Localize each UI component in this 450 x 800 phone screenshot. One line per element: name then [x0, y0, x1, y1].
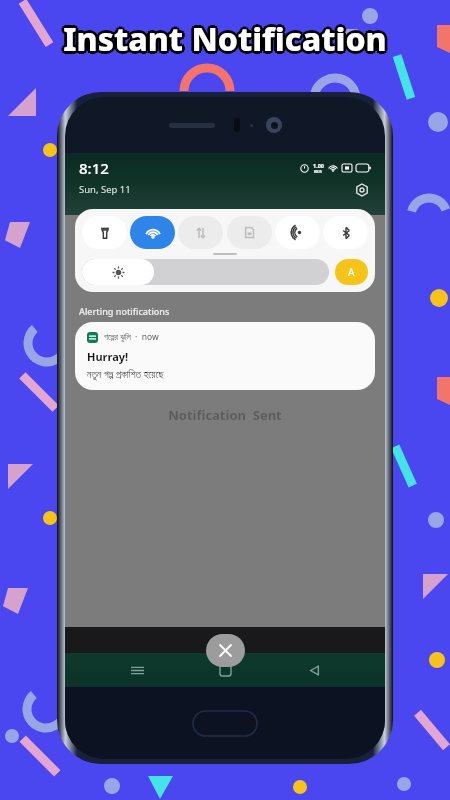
- button[interactable]: Hotspot: [275, 216, 320, 249]
- staticText: A: [348, 265, 355, 279]
- button[interactable]: Mobile data: [178, 216, 223, 249]
- staticText: KB/S: [314, 169, 323, 174]
- staticText: Instant Notification: [66, 17, 390, 61]
- button[interactable]: A: [335, 259, 368, 285]
- staticText: Instant Notification: [63, 14, 387, 58]
- button[interactable]: SIM card: [227, 216, 272, 249]
- staticText: Instant Notification: [63, 17, 387, 61]
- staticText: Instant Notification: [63, 20, 387, 64]
- button[interactable]: Bluetooth: [323, 216, 368, 249]
- staticText: 1.00: [313, 162, 324, 169]
- button[interactable]: Settings: [352, 180, 371, 199]
- staticText: Instant Notification: [65, 19, 389, 63]
- button[interactable]: Flashlight: [82, 216, 127, 249]
- staticText: Sun, Sep 11: [79, 183, 131, 196]
- button[interactable]: Brightness: [82, 259, 329, 285]
- button[interactable]: Back: [297, 653, 331, 687]
- staticText: Hurray!: [87, 349, 129, 364]
- staticText: গল্পের ঝুলি · now: [104, 331, 159, 343]
- button[interactable]: Close: [206, 634, 245, 667]
- staticText: 8:12: [79, 158, 109, 178]
- staticText: Instant Notification: [60, 17, 384, 61]
- button[interactable]: Home: [208, 653, 242, 687]
- button[interactable]: Wi-Fi: [130, 216, 175, 249]
- button[interactable]: Recents: [120, 653, 154, 687]
- staticText: Instant Notification: [61, 15, 385, 59]
- button[interactable]: গল্পের ঝুলি · now: [75, 322, 375, 390]
- staticText: Notification Sent: [65, 406, 385, 424]
- staticText: Instant Notification: [65, 15, 389, 59]
- staticText: Instant Notification: [61, 19, 385, 63]
- staticText: নতুন গল্প প্রকাশিত হয়েছে: [87, 367, 164, 381]
- staticText: Alerting notifications: [79, 305, 170, 317]
